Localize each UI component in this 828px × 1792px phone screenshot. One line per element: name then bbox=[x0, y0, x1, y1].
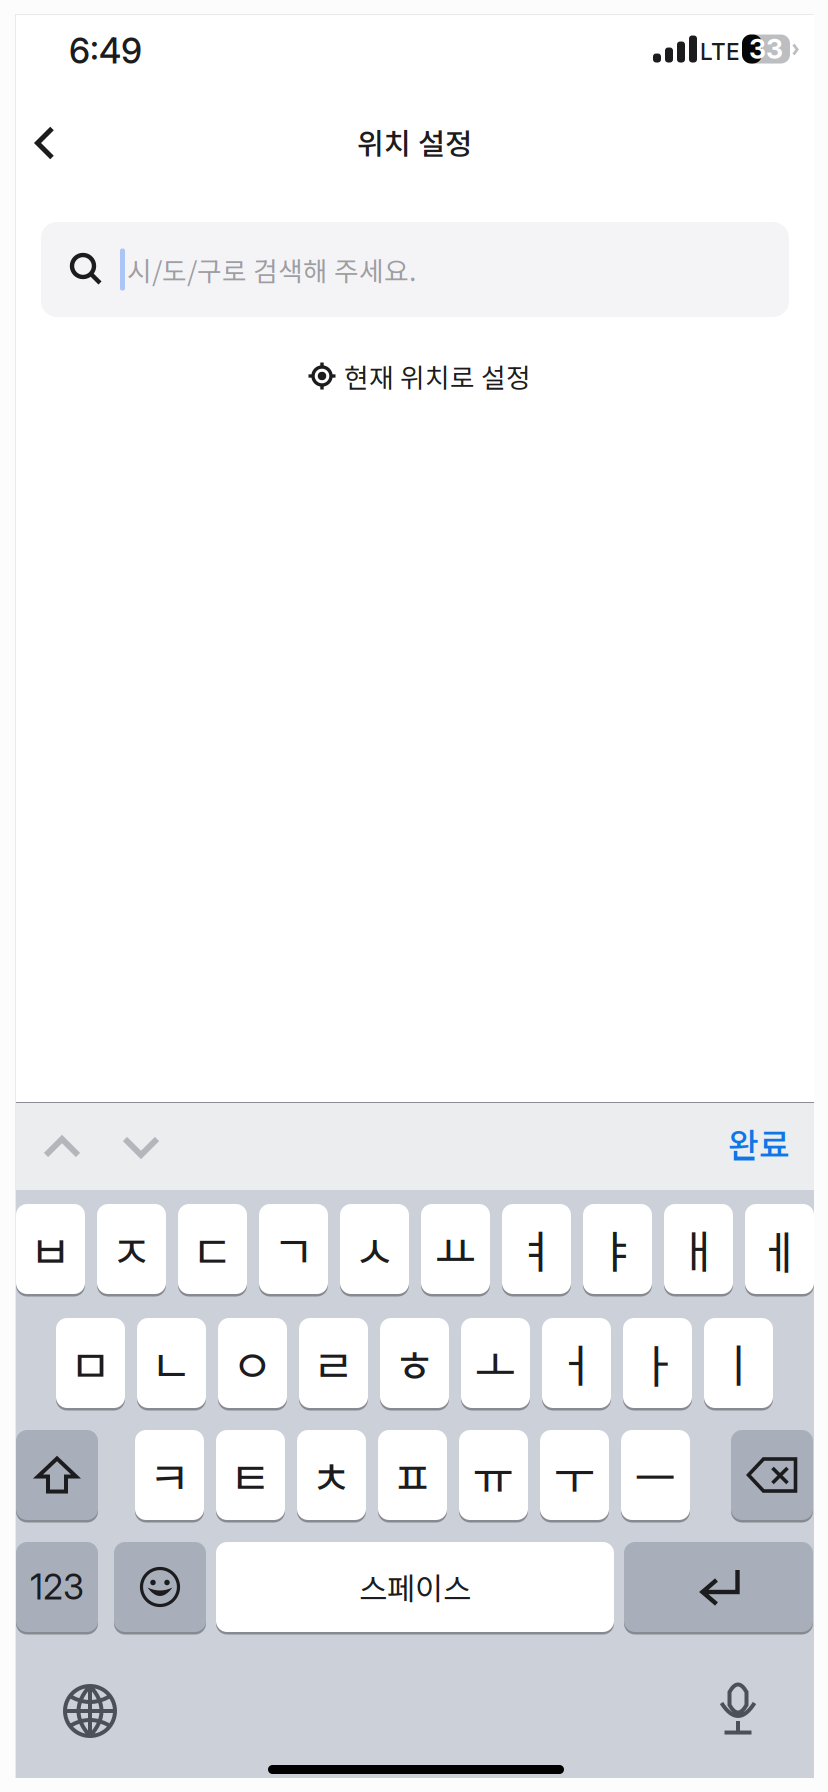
staticText: ㅣ bbox=[717, 1330, 759, 1396]
staticText: ㅍ bbox=[391, 1442, 433, 1508]
staticText: 123 bbox=[30, 1566, 84, 1608]
button[interactable]: ㅂ bbox=[16, 1204, 85, 1294]
button[interactable]: 완료 bbox=[690, 1108, 790, 1178]
button[interactable]: 123 bbox=[16, 1542, 98, 1632]
button[interactable]: Return bbox=[624, 1542, 813, 1632]
button[interactable]: ㅈ bbox=[97, 1204, 166, 1294]
staticText: ㅁ bbox=[69, 1330, 111, 1396]
button[interactable]: ㅊ bbox=[297, 1430, 366, 1520]
button[interactable]: Delete bbox=[731, 1430, 813, 1520]
staticText: ㅏ bbox=[636, 1330, 678, 1396]
staticText: ㅐ bbox=[677, 1216, 719, 1282]
button[interactable]: ㅅ bbox=[340, 1204, 409, 1294]
button[interactable]: ㄴ bbox=[137, 1318, 206, 1408]
button[interactable]: ㅋ bbox=[135, 1430, 204, 1520]
staticText: ㅎ bbox=[393, 1330, 435, 1396]
button[interactable]: Dictation bbox=[693, 1670, 783, 1744]
staticText: ㄱ bbox=[272, 1216, 314, 1282]
button[interactable]: ㅗ bbox=[461, 1318, 530, 1408]
staticText: ㄹ bbox=[312, 1330, 354, 1396]
staticText: 33 bbox=[749, 33, 783, 65]
staticText: ㅈ bbox=[110, 1216, 152, 1282]
button[interactable]: ㅣ bbox=[704, 1318, 773, 1408]
staticText: ㅔ bbox=[758, 1216, 800, 1282]
staticText: ㅂ bbox=[29, 1216, 71, 1282]
button[interactable]: ㅑ bbox=[583, 1204, 652, 1294]
staticText: 6:49 bbox=[69, 30, 142, 72]
button[interactable]: Previous field bbox=[27, 1112, 97, 1182]
button[interactable]: Back bbox=[7, 105, 83, 181]
button[interactable]: ㅓ bbox=[542, 1318, 611, 1408]
button[interactable]: Emoji bbox=[114, 1542, 206, 1632]
button[interactable]: ㅛ bbox=[421, 1204, 490, 1294]
staticText: ㅗ bbox=[474, 1330, 516, 1396]
staticText: ㅅ bbox=[353, 1216, 395, 1282]
button[interactable]: ㄷ bbox=[178, 1204, 247, 1294]
staticText: 위치 설정 bbox=[357, 121, 472, 163]
staticText: ㅠ bbox=[472, 1442, 514, 1508]
button[interactable]: ㅠ bbox=[459, 1430, 528, 1520]
staticText: ㅛ bbox=[434, 1216, 476, 1282]
staticText: ㅋ bbox=[148, 1442, 190, 1508]
staticText: ㅕ bbox=[515, 1216, 557, 1282]
button[interactable]: 현재 위치로 설정 bbox=[308, 345, 531, 407]
staticText: ㅜ bbox=[553, 1442, 595, 1508]
button[interactable]: Next keyboard bbox=[45, 1674, 135, 1748]
button[interactable]: Shift bbox=[16, 1430, 98, 1520]
button[interactable]: 시/도/구로 검색해 주세요. bbox=[41, 222, 789, 317]
staticText: 시/도/구로 검색해 주세요. bbox=[127, 250, 416, 289]
button[interactable]: ㅎ bbox=[380, 1318, 449, 1408]
button[interactable]: 스페이스 bbox=[216, 1542, 614, 1632]
button[interactable]: ㅕ bbox=[502, 1204, 571, 1294]
staticText: ㅌ bbox=[229, 1442, 271, 1508]
button[interactable]: ㅜ bbox=[540, 1430, 609, 1520]
staticText: ㅑ bbox=[596, 1216, 638, 1282]
button[interactable]: Next field bbox=[106, 1112, 176, 1182]
staticText: ㄷ bbox=[191, 1216, 233, 1282]
button[interactable]: ㅏ bbox=[623, 1318, 692, 1408]
staticText: 완료 bbox=[728, 1119, 790, 1167]
staticText: 스페이스 bbox=[359, 1565, 471, 1609]
button[interactable]: ㄹ bbox=[299, 1318, 368, 1408]
button[interactable]: ㅍ bbox=[378, 1430, 447, 1520]
staticText: 현재 위치로 설정 bbox=[344, 357, 531, 395]
button[interactable]: ㅌ bbox=[216, 1430, 285, 1520]
button[interactable]: ㅔ bbox=[745, 1204, 814, 1294]
staticText: ㅇ bbox=[231, 1330, 273, 1396]
staticText: ㅊ bbox=[310, 1442, 352, 1508]
button[interactable]: ㅐ bbox=[664, 1204, 733, 1294]
button[interactable]: ㅡ bbox=[621, 1430, 690, 1520]
button[interactable]: ㅇ bbox=[218, 1318, 287, 1408]
staticText: ㄴ bbox=[150, 1330, 192, 1396]
button[interactable]: ㅁ bbox=[56, 1318, 125, 1408]
staticText: ㅓ bbox=[555, 1330, 597, 1396]
staticText: ㅡ bbox=[634, 1442, 676, 1508]
staticText: LTE bbox=[700, 38, 740, 65]
button[interactable]: ㄱ bbox=[259, 1204, 328, 1294]
